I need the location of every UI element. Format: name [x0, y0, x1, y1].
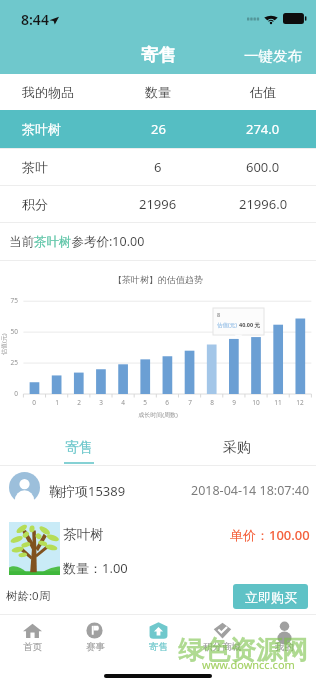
staticText: 寄售	[141, 44, 176, 66]
staticText: 茶叶树	[63, 526, 104, 543]
button[interactable]: 采购	[158, 439, 316, 465]
button[interactable]: Home	[0, 615, 64, 662]
staticText: 树龄:0周	[6, 588, 51, 604]
other: Consign	[149, 622, 168, 639]
staticText: 茶叶树	[22, 121, 61, 137]
button[interactable]: 茶叶树	[0, 110, 316, 148]
staticText: 当前茶叶树参考价:10.00	[9, 233, 145, 250]
staticText: 1	[49, 398, 65, 407]
staticText: 12	[292, 398, 308, 407]
staticText: 估值(元)	[0, 333, 8, 355]
other: Home	[23, 622, 42, 639]
button[interactable]: 我的物品	[0, 74, 316, 110]
staticText: 估值(元)	[217, 321, 237, 329]
staticText: 我的	[275, 641, 294, 653]
staticText: 6	[159, 398, 175, 407]
staticText: 我的物品	[22, 84, 74, 100]
staticText: 4	[115, 398, 131, 407]
button[interactable]: Mine	[253, 615, 316, 662]
staticText: 11	[270, 398, 286, 407]
staticText: 21996	[139, 195, 177, 213]
staticText: 50	[1, 327, 18, 336]
staticText: 7	[182, 398, 198, 407]
button[interactable]: 寄售	[0, 439, 158, 465]
staticText: 2018-04-14 18:07:40	[191, 482, 310, 499]
staticText: 茶叶	[22, 159, 48, 175]
staticText: 8:44	[21, 10, 49, 29]
staticText: 积分商城	[203, 641, 241, 653]
staticText: 成长时间(周数)	[0, 411, 316, 419]
staticText: 25	[1, 358, 18, 367]
staticText: www.downcc.com	[202, 657, 295, 672]
staticText: 10	[248, 398, 264, 407]
staticText: 8	[204, 398, 220, 407]
staticText: 5	[137, 398, 153, 407]
staticText: 单价：100.00	[230, 526, 310, 544]
other: Mine	[275, 622, 294, 639]
staticText: 采购	[223, 439, 251, 457]
staticText: 数量	[145, 84, 171, 100]
staticText: 40.00 元	[239, 321, 261, 329]
other: Events	[86, 622, 105, 639]
staticText: 2	[71, 398, 87, 407]
button[interactable]: 积分	[0, 186, 316, 222]
staticText: 26	[151, 120, 166, 138]
staticText: 估值	[250, 84, 276, 100]
staticText: 0	[1, 389, 18, 398]
button[interactable]: 一键发布	[232, 40, 316, 72]
staticText: 600.0	[246, 158, 280, 176]
staticText: 赛事	[86, 641, 105, 653]
button[interactable]: Points mall	[190, 615, 253, 662]
staticText: 绿色资源网	[178, 634, 308, 667]
staticText: 数量：1.00	[63, 559, 128, 577]
button[interactable]: Consign	[127, 615, 190, 662]
staticText: 6	[154, 158, 162, 176]
staticText: 首页	[23, 641, 42, 653]
button[interactable]: Events	[64, 615, 127, 662]
staticText: 0	[26, 398, 42, 407]
staticText: 积分	[22, 196, 48, 212]
staticText: 一键发布	[244, 47, 302, 65]
staticText: 寄售	[149, 641, 168, 653]
staticText: 立即购买	[245, 589, 297, 605]
staticText: 【茶叶树】的估值趋势	[113, 274, 203, 285]
staticText: 9	[226, 398, 242, 407]
staticText: 21996.0	[239, 195, 288, 213]
other: Points mall	[213, 622, 232, 639]
staticText: 75	[1, 296, 18, 305]
staticText: 3	[93, 398, 109, 407]
staticText: 274.0	[246, 120, 280, 138]
button[interactable]: 鞠拧项15389	[0, 466, 316, 509]
button[interactable]: 茶叶	[0, 149, 316, 185]
staticText: 寄售	[65, 439, 93, 457]
staticText: 8	[217, 311, 221, 318]
button[interactable]: 立即购买	[233, 584, 308, 609]
staticText: 鞠拧项15389	[49, 482, 126, 500]
